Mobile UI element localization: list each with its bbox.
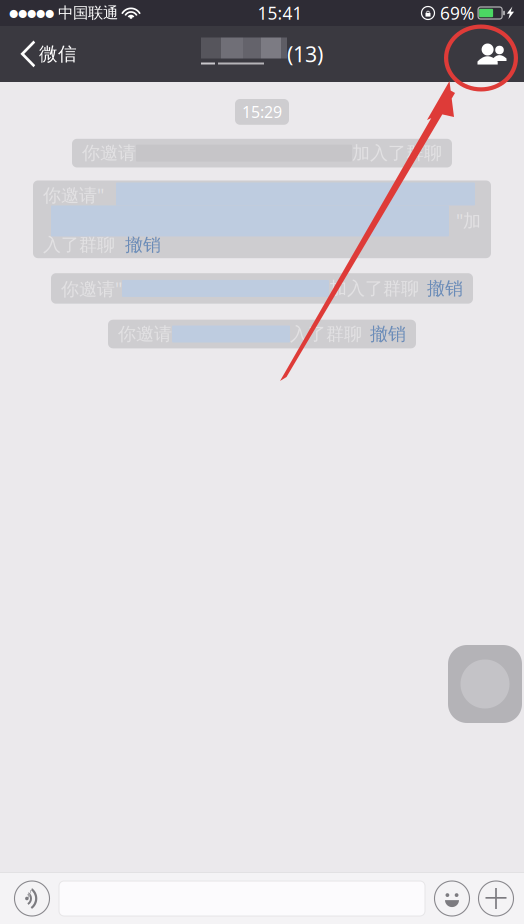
staticText: 撤销 bbox=[370, 323, 406, 345]
button[interactable]: Group members bbox=[463, 26, 524, 82]
staticText: 69% bbox=[440, 1, 474, 25]
staticText: 入了群聊 bbox=[290, 323, 362, 345]
staticText: 中国联通 bbox=[58, 3, 118, 23]
staticText: 你邀请 bbox=[118, 323, 172, 345]
button[interactable]: Voice message bbox=[10, 876, 54, 920]
staticText: (13) bbox=[287, 39, 323, 69]
staticText: 15:29 bbox=[242, 101, 282, 123]
staticText: 撤销 bbox=[125, 233, 161, 256]
staticText: 入了群聊 bbox=[43, 233, 115, 256]
staticText: 微信 bbox=[39, 42, 77, 66]
staticText: 你邀请 bbox=[82, 142, 136, 164]
staticText: ●●●●● bbox=[9, 7, 54, 19]
staticText: 你邀请" bbox=[61, 276, 122, 301]
staticText: 撤销 bbox=[427, 277, 463, 300]
button[interactable]: Emoji bbox=[430, 876, 474, 920]
staticText: "加 bbox=[456, 208, 481, 232]
button[interactable]: 微信 bbox=[0, 26, 91, 82]
staticText: 15:41 bbox=[257, 1, 302, 25]
button[interactable]: More bbox=[474, 876, 518, 920]
staticText: 加入了群聊 bbox=[329, 277, 419, 300]
staticText: 加入了群聊 bbox=[352, 142, 442, 164]
staticText: 你邀请" bbox=[43, 182, 104, 207]
